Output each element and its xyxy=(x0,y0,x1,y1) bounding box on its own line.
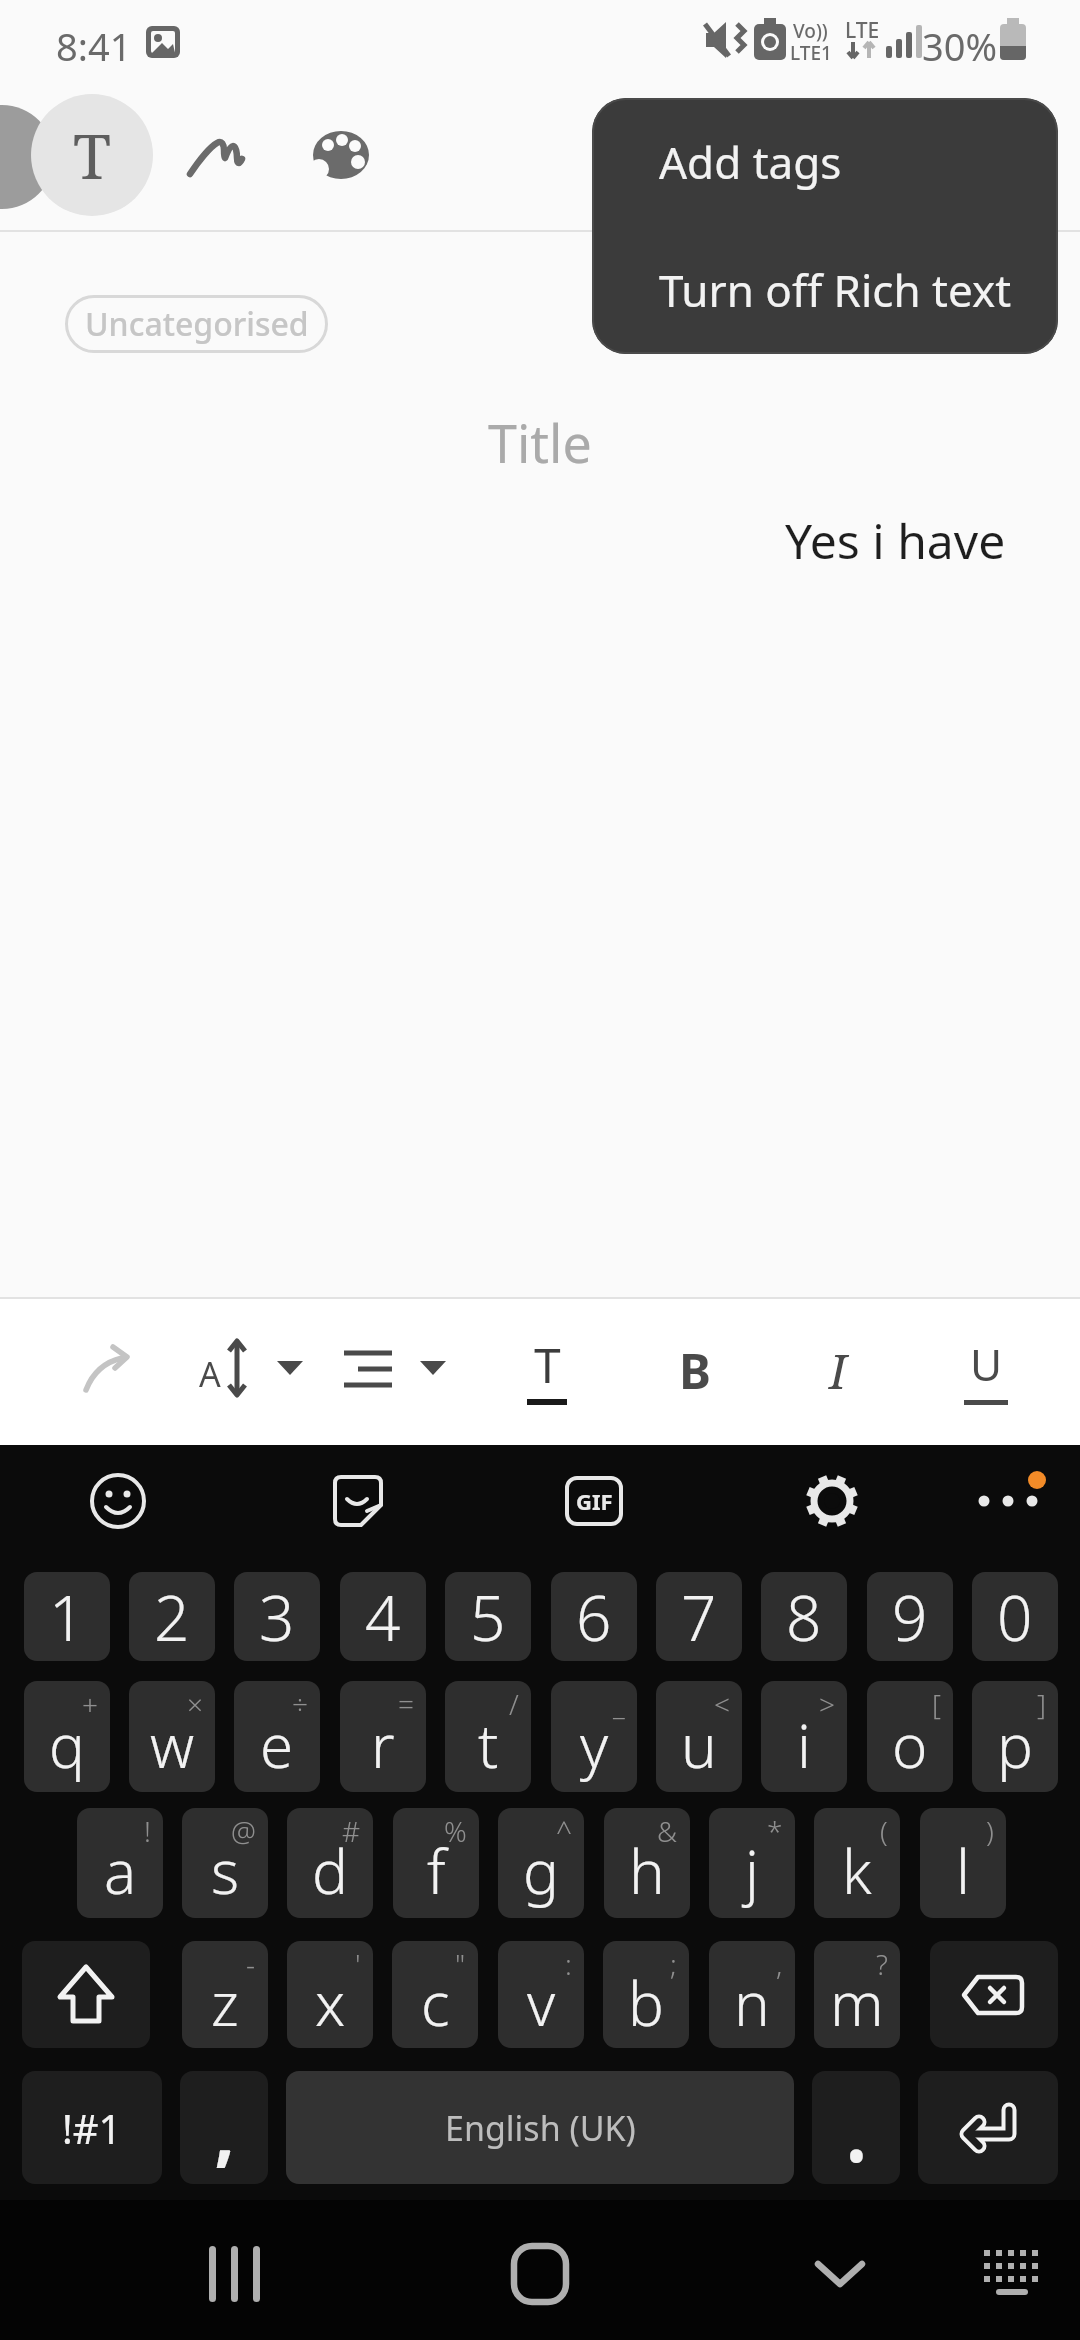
staticText: Add tags xyxy=(659,132,842,192)
button[interactable]: , xyxy=(180,2071,268,2184)
button[interactable]: English (UK) xyxy=(286,2071,794,2184)
button[interactable]: s xyxy=(182,1808,268,1918)
button[interactable]: l xyxy=(920,1808,1006,1918)
button[interactable] xyxy=(792,1461,872,1541)
staticText: T xyxy=(534,1332,561,1397)
button[interactable]: o xyxy=(867,1681,953,1792)
button[interactable]: q xyxy=(24,1681,110,1792)
button[interactable]: u xyxy=(656,1681,742,1792)
button[interactable]: i xyxy=(761,1681,847,1792)
button[interactable] xyxy=(22,1941,150,2048)
staticText: 5 xyxy=(470,1575,506,1659)
staticText: n xyxy=(734,1962,770,2044)
button[interactable]: b xyxy=(603,1941,689,2048)
staticText: * xyxy=(767,1812,783,1850)
staticText: < xyxy=(714,1685,730,1723)
button[interactable]: GIF xyxy=(554,1461,634,1541)
button[interactable]: 6 xyxy=(551,1572,637,1661)
staticText: v xyxy=(527,1962,556,2044)
button[interactable]: r xyxy=(340,1681,426,1792)
button[interactable]: a xyxy=(77,1808,163,1918)
button[interactable] xyxy=(78,1461,158,1541)
staticText: r xyxy=(371,1704,395,1786)
button[interactable]: x xyxy=(287,1941,373,2048)
button[interactable]: f xyxy=(393,1808,479,1918)
button[interactable] xyxy=(800,2238,880,2310)
button[interactable]: h xyxy=(604,1808,690,1918)
staticText: LTE1 xyxy=(790,40,832,66)
button[interactable]: 1 xyxy=(24,1572,110,1661)
button[interactable] xyxy=(918,2071,1058,2184)
staticText: ; xyxy=(670,1945,677,1983)
staticText: h xyxy=(629,1830,665,1912)
button[interactable] xyxy=(338,1335,453,1405)
button[interactable]: k xyxy=(814,1808,900,1918)
button[interactable]: T xyxy=(512,1335,582,1405)
button[interactable]: . xyxy=(812,2071,900,2184)
staticText: 1 xyxy=(49,1575,85,1659)
staticText: p xyxy=(997,1704,1033,1786)
staticText: 8 xyxy=(786,1575,822,1659)
staticText: A xyxy=(199,1351,221,1397)
button[interactable]: !#1 xyxy=(22,2071,162,2184)
staticText: 3 xyxy=(259,1575,295,1659)
button[interactable]: 3 xyxy=(234,1572,320,1661)
button[interactable]: t xyxy=(445,1681,531,1792)
button[interactable]: B xyxy=(660,1335,730,1405)
staticText: ' xyxy=(355,1945,361,1983)
staticText: ! xyxy=(144,1812,151,1850)
button[interactable]: U xyxy=(951,1335,1021,1405)
staticText: - xyxy=(246,1945,256,1983)
button[interactable]: j xyxy=(709,1808,795,1918)
staticText: Yes i have xyxy=(785,508,1006,573)
button[interactable] xyxy=(500,2238,580,2310)
button[interactable]: 0 xyxy=(972,1572,1058,1661)
staticText: f xyxy=(427,1830,446,1912)
button[interactable]: n xyxy=(709,1941,795,2048)
button[interactable] xyxy=(972,2238,1052,2310)
button[interactable]: 2 xyxy=(129,1572,215,1661)
button[interactable]: Uncategorised xyxy=(65,295,328,353)
button[interactable]: c xyxy=(392,1941,478,2048)
button[interactable]: v xyxy=(498,1941,584,2048)
staticText: u xyxy=(681,1704,717,1786)
staticText: ÷ xyxy=(292,1685,308,1723)
button[interactable] xyxy=(80,1340,140,1400)
staticText: x xyxy=(315,1962,346,2044)
staticText: k xyxy=(842,1830,872,1912)
button[interactable]: e xyxy=(234,1681,320,1792)
button[interactable]: p xyxy=(972,1681,1058,1792)
staticText: l xyxy=(956,1830,970,1912)
button[interactable]: z xyxy=(182,1941,268,2048)
staticText: Vo)) xyxy=(793,18,828,44)
button[interactable] xyxy=(968,1461,1058,1551)
staticText: # xyxy=(342,1812,361,1850)
button[interactable] xyxy=(930,1941,1058,2048)
button[interactable] xyxy=(291,105,391,205)
button[interactable] xyxy=(165,105,265,205)
button[interactable]: 5 xyxy=(445,1572,531,1661)
button[interactable]: y xyxy=(551,1681,637,1792)
staticText: a xyxy=(104,1830,137,1912)
button[interactable]: I xyxy=(803,1335,873,1405)
button[interactable]: 8 xyxy=(761,1572,847,1661)
staticText: ^ xyxy=(556,1812,572,1850)
button[interactable]: A xyxy=(185,1335,310,1405)
button[interactable]: 7 xyxy=(656,1572,742,1661)
button[interactable] xyxy=(195,2238,275,2310)
button[interactable]: 9 xyxy=(867,1572,953,1661)
staticText: " xyxy=(455,1945,466,1983)
button[interactable]: 4 xyxy=(340,1572,426,1661)
button[interactable]: T xyxy=(31,94,153,216)
staticText: I xyxy=(829,1338,847,1403)
button[interactable]: g xyxy=(498,1808,584,1918)
staticText: w xyxy=(150,1704,195,1786)
button[interactable]: Add tags xyxy=(592,98,1058,226)
button[interactable]: m xyxy=(814,1941,900,2048)
button[interactable] xyxy=(317,1461,397,1541)
button[interactable]: d xyxy=(287,1808,373,1918)
button[interactable]: Turn off Rich text xyxy=(592,226,1058,354)
staticText: , xyxy=(211,2071,238,2168)
staticText: 2 xyxy=(154,1575,190,1659)
button[interactable]: w xyxy=(129,1681,215,1792)
